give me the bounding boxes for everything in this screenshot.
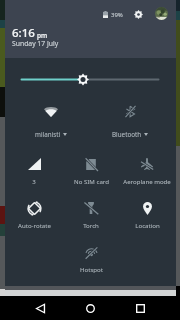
- button[interactable]: Recent apps: [128, 296, 152, 320]
- staticText: No SIM card: [74, 177, 109, 185]
- staticText: Location: [135, 221, 160, 229]
- button[interactable]: Torch: [63, 195, 119, 235]
- button[interactable]: [91, 98, 177, 138]
- button[interactable]: Back: [28, 296, 52, 320]
- button[interactable]: User profile: [155, 7, 168, 20]
- staticText: Hotspot: [80, 265, 103, 273]
- staticText: 6:16: [12, 25, 35, 41]
- staticText: Sunday 17 July: [12, 39, 59, 48]
- button[interactable]: Location: [119, 195, 175, 235]
- staticText: Torch: [83, 221, 99, 229]
- button[interactable]: Hotspot: [63, 239, 119, 279]
- staticText: 39%: [111, 11, 123, 19]
- staticText: Aeroplane mode: [123, 177, 171, 185]
- button[interactable]: Home: [78, 296, 102, 320]
- staticText: Auto-rotate: [18, 221, 51, 229]
- staticText: pm: [37, 31, 48, 40]
- staticText: milanisti: [35, 130, 61, 139]
- staticText: 3: [32, 177, 36, 185]
- staticText: Bluetooth: [112, 130, 142, 139]
- button[interactable]: Auto-rotate: [6, 195, 62, 235]
- button[interactable]: Brightness: [5, 70, 176, 90]
- button[interactable]: [5, 98, 91, 138]
- button[interactable]: Settings: [130, 6, 146, 22]
- button[interactable]: Aeroplane mode: [119, 151, 175, 191]
- button[interactable]: No SIM card: [63, 151, 119, 191]
- button[interactable]: 3: [6, 151, 62, 191]
